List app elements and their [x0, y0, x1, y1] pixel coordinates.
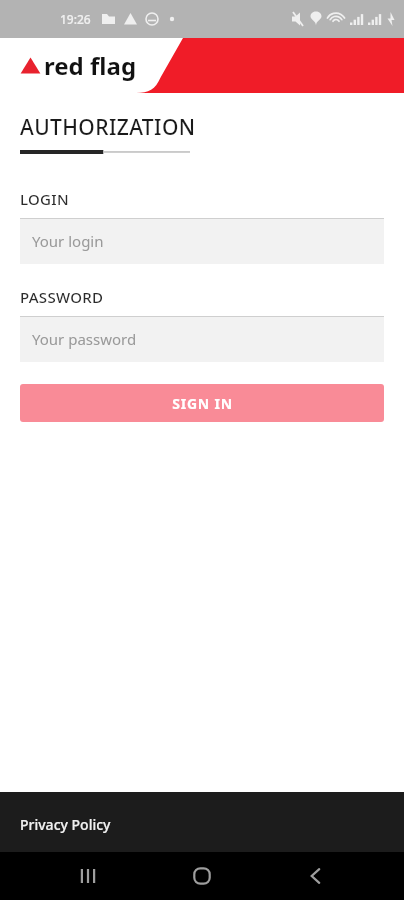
button[interactable]: Privacy Policy — [20, 815, 111, 834]
staticText: LOGIN — [20, 189, 69, 209]
staticText: Your password — [32, 329, 137, 349]
staticText: PASSWORD — [20, 287, 104, 307]
button[interactable]: SIGN IN — [20, 384, 384, 422]
button[interactable]: Recent apps — [64, 852, 112, 900]
button[interactable]: Home — [178, 852, 226, 900]
button[interactable]: Back — [292, 852, 340, 900]
button[interactable]: Your password — [20, 316, 384, 362]
button[interactable]: Your login — [20, 218, 384, 264]
staticText: SIGN IN — [172, 394, 233, 413]
staticText: Your login — [32, 231, 104, 251]
staticText: red flag — [44, 49, 137, 82]
staticText: Privacy Policy — [20, 815, 111, 834]
staticText: 19:26 — [60, 11, 91, 27]
staticText: AUTHORIZATION — [20, 113, 196, 142]
